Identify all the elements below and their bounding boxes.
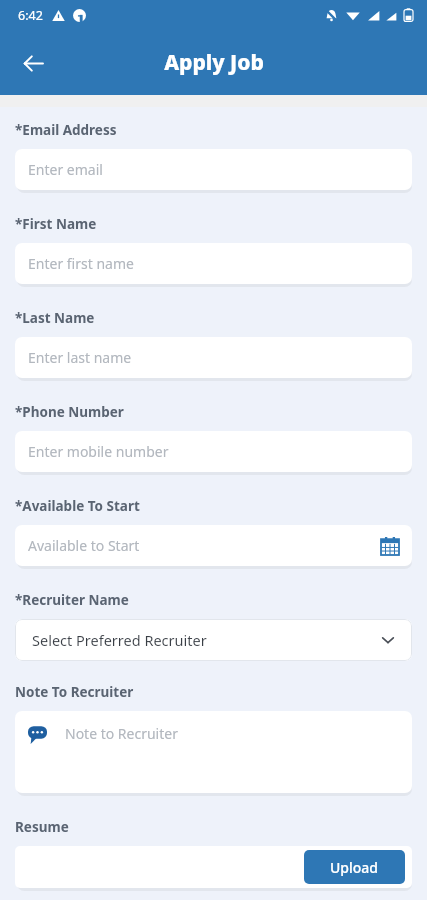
button[interactable]: Enter last name xyxy=(15,337,412,378)
staticText: *Last Name xyxy=(15,309,95,327)
staticText: Select Preferred Recruiter xyxy=(32,630,381,650)
staticText: *Phone Number xyxy=(15,403,124,421)
staticText: Enter mobile number xyxy=(28,442,399,461)
button[interactable]: Select Preferred Recruiter xyxy=(15,619,412,661)
staticText: Enter email xyxy=(28,160,399,179)
button[interactable]: Enter email xyxy=(15,149,412,190)
staticText: Available to Start xyxy=(28,536,381,555)
staticText: 6:42 xyxy=(18,7,43,24)
staticText: *Recruiter Name xyxy=(15,591,129,609)
button[interactable]: Note to Recruiter xyxy=(15,711,412,793)
button[interactable]: Upload xyxy=(15,846,412,888)
staticText: Note to Recruiter xyxy=(65,724,399,743)
staticText: *Email Address xyxy=(15,121,117,139)
staticText: Enter first name xyxy=(28,254,399,273)
button[interactable]: Enter mobile number xyxy=(15,431,412,472)
staticText: *Available To Start xyxy=(15,497,140,515)
staticText: Resume xyxy=(15,818,69,836)
button[interactable]: Back xyxy=(13,43,53,83)
staticText: Note To Recruiter xyxy=(15,683,134,701)
button[interactable]: Available to Start xyxy=(15,525,412,566)
staticText: Enter last name xyxy=(28,348,399,367)
staticText: Apply Job xyxy=(164,48,264,77)
button[interactable]: Upload xyxy=(304,850,405,884)
staticText: *First Name xyxy=(15,215,97,233)
button[interactable]: Enter first name xyxy=(15,243,412,284)
staticText: Upload xyxy=(330,858,379,877)
